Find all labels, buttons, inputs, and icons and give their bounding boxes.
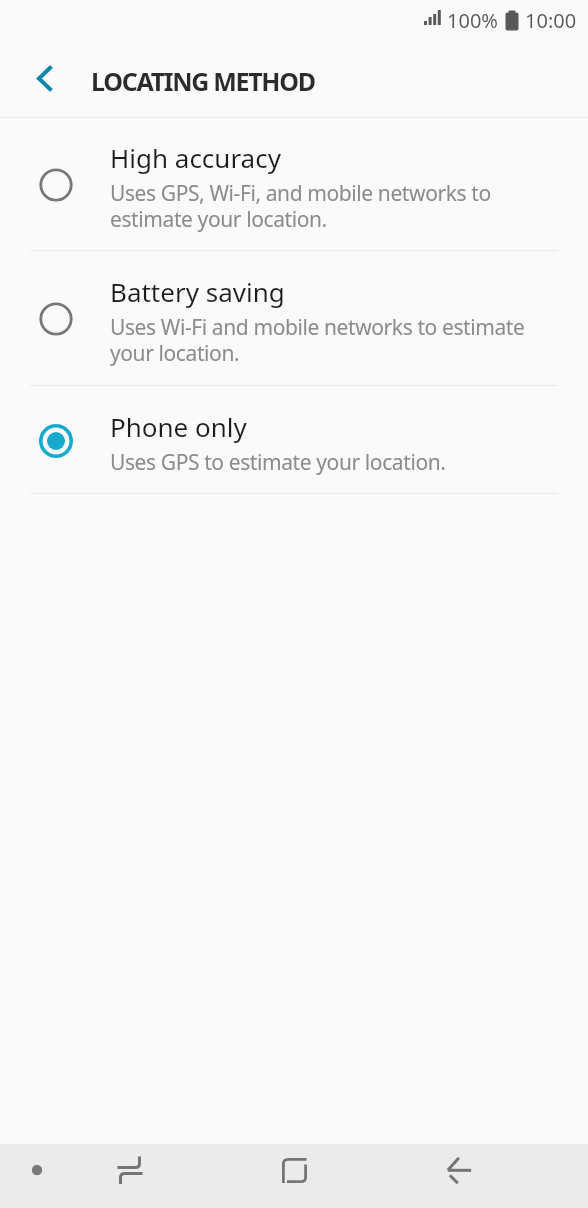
staticText: Battery saving <box>110 274 285 309</box>
staticText: 10:00 <box>525 7 577 34</box>
button[interactable] <box>13 1146 61 1194</box>
staticText: Phone only <box>110 409 247 444</box>
button[interactable]: Battery saving <box>0 251 588 385</box>
staticText: Uses GPS, Wi-Fi, and mobile networks to … <box>110 179 491 234</box>
button[interactable]: High accuracy <box>0 118 588 250</box>
button[interactable] <box>106 1146 154 1194</box>
staticText: 100% <box>447 7 498 34</box>
staticText: LOCATING METHOD <box>91 64 315 98</box>
staticText: Uses GPS to estimate your location. <box>110 448 446 477</box>
staticText: Uses Wi-Fi and mobile networks to estima… <box>110 313 525 368</box>
button[interactable] <box>270 1146 318 1194</box>
button[interactable]: Phone only <box>0 386 588 493</box>
button[interactable] <box>435 1146 483 1194</box>
button[interactable] <box>0 40 72 117</box>
staticText: High accuracy <box>110 140 281 175</box>
